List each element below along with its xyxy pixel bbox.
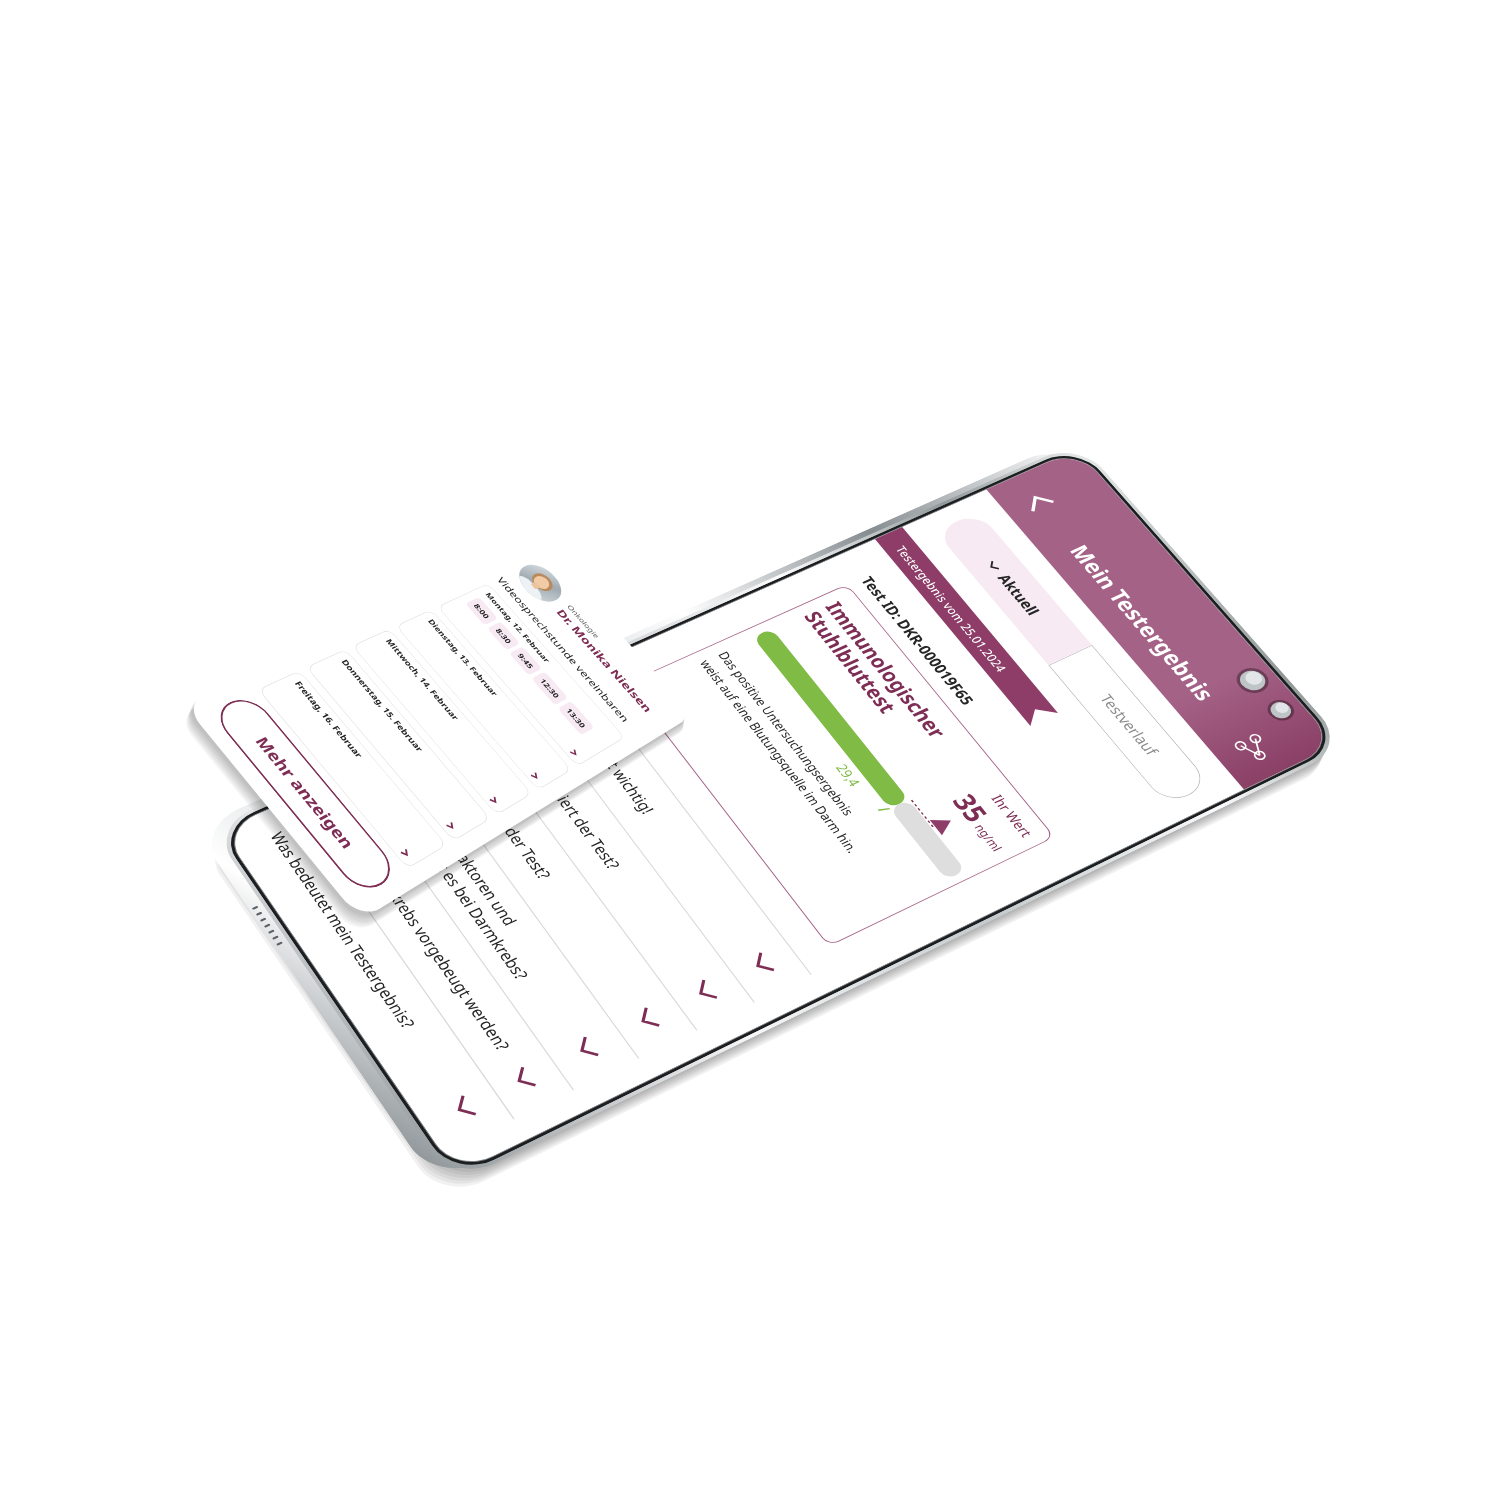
staticText: Mittwoch, 14. Februar (383, 637, 462, 722)
button[interactable]: 12:30 (531, 671, 568, 706)
staticText: Wie funktioniert der Test? (501, 723, 625, 873)
button[interactable]: Testverlauf (1048, 645, 1211, 806)
button[interactable]: Dienstag, 13. Februar (395, 609, 572, 790)
staticText: Mehr anzeigen (250, 733, 359, 853)
button[interactable]: 8:00 (465, 597, 498, 625)
button[interactable]: 13:30 (557, 701, 595, 735)
staticText: Vorsorge ist wichtig! (557, 698, 659, 817)
staticText: Wie kann Darmkrebs vorgebeugt werden? (324, 802, 515, 1055)
staticText: Videosprechstunde vereinbaren (494, 575, 632, 724)
button[interactable]: Share (1232, 732, 1276, 765)
staticText: Testergebnis vom 25.01.2024 (892, 543, 1011, 674)
staticText: 12:30 (538, 677, 562, 700)
staticText: ng/ml (971, 821, 1006, 854)
staticText: Mein Testergebnis (1063, 540, 1223, 705)
staticText: Donnerstag, 15. Februar (339, 658, 426, 754)
button[interactable]: Wie kann Darmkrebs vorgebeugt werden? (290, 773, 588, 1139)
staticText: 29,4 (832, 761, 865, 789)
staticText: Freitag, 16. Februar (292, 679, 365, 759)
button[interactable]: Was bedeutet mein Testergebnis? (232, 799, 528, 1169)
button[interactable]: Vorsorge ist wichtig! (524, 671, 826, 1022)
staticText: 8:00 (471, 602, 492, 620)
staticText: Testverlauf (1095, 691, 1163, 758)
staticText: Dr. Monika Nielsen (553, 607, 655, 715)
staticText: Das positive Untersuchungsergebnis weist… (696, 649, 881, 856)
button[interactable]: Mehr anzeigen (209, 692, 401, 897)
staticText: Wie sicher ist der Test? (444, 748, 556, 883)
button[interactable]: Welche Risikofaktoren und Symptome gibt … (348, 745, 653, 1110)
staticText: Dienstag, 13. Februar (426, 618, 500, 697)
button[interactable]: 9:45 (509, 646, 542, 676)
staticText: Immunologischer Stuhlbluttest (798, 597, 954, 753)
button[interactable]: Mittwoch, 14. Februar (352, 628, 532, 815)
staticText: Ihr Wert (987, 792, 1037, 840)
staticText: 13:30 (564, 706, 588, 729)
button[interactable]: Freitag, 16. Februar (258, 670, 447, 869)
staticText: 8:30 (493, 627, 514, 645)
button[interactable]: Montag, 12. Februar (437, 583, 625, 767)
staticText: 9:45 (515, 652, 536, 670)
button[interactable]: Aktuell (935, 512, 1092, 665)
staticText: Test ID: DKR-000019F65 (856, 573, 979, 708)
staticText: Aktuell (993, 571, 1045, 619)
button[interactable]: Wie funktioniert der Test? (468, 695, 769, 1050)
staticText: Welche Risikofaktoren und Symptome gibt … (374, 771, 554, 983)
button[interactable]: Donnerstag, 15. Februar (306, 649, 491, 841)
staticText: Was bedeutet mein Testergebnis? (265, 828, 421, 1032)
button[interactable]: Back (1011, 482, 1069, 524)
staticText: Onkologie (565, 603, 602, 640)
staticText: Montag, 12. Februar (483, 591, 552, 664)
button[interactable]: 8:30 (487, 621, 520, 651)
staticText: 35 (944, 788, 997, 828)
button[interactable]: Wie sicher ist der Test? (411, 720, 711, 1078)
